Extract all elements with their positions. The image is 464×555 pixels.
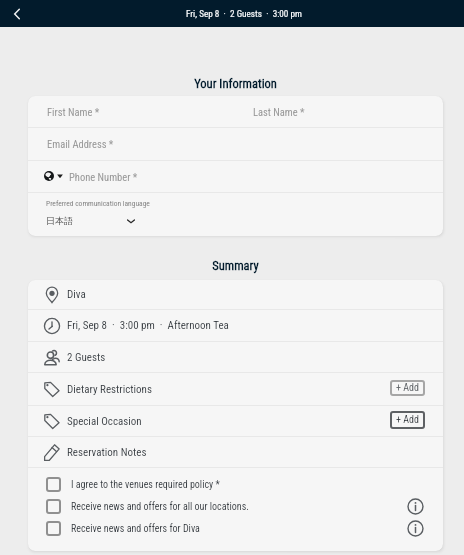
staticText: Summary <box>28 258 443 273</box>
button[interactable]: Receive news and offers for all our loca… <box>28 495 443 517</box>
staticText: + Add <box>396 414 419 426</box>
button[interactable]: Back <box>4 1 30 27</box>
staticText: 日本語 <box>46 215 73 226</box>
button[interactable]: Diva <box>28 280 443 309</box>
button[interactable]: + Add <box>390 411 425 429</box>
button[interactable]: Phone Number * <box>28 161 443 192</box>
button[interactable]: First Name * <box>28 96 235 127</box>
staticText: I agree to the venues required policy * <box>71 479 220 491</box>
staticText: Reservation Notes <box>67 446 147 459</box>
staticText: Diva <box>67 288 86 301</box>
button[interactable]: Reservation Notes <box>28 437 443 467</box>
button[interactable]: Receive news and offers for Diva <box>28 517 443 539</box>
button[interactable]: Last Name * <box>235 96 443 127</box>
staticText: 2 Guests <box>67 351 106 364</box>
button[interactable]: Special Occasion <box>28 406 443 436</box>
button[interactable]: + Add <box>390 380 425 396</box>
button[interactable]: Dietary Restrictions <box>28 373 443 405</box>
button[interactable]: More information <box>407 498 424 515</box>
staticText: Special Occasion <box>67 415 142 428</box>
button[interactable]: More information <box>407 520 424 537</box>
button[interactable]: Email Address * <box>28 128 443 160</box>
staticText: Fri, Sep 8 · 3:00 pm · Afternoon Tea <box>67 319 229 332</box>
staticText: First Name * <box>47 106 100 118</box>
button[interactable]: 2 Guests <box>28 342 443 372</box>
staticText: Email Address * <box>47 138 114 150</box>
staticText: Receive news and offers for all our loca… <box>71 501 249 513</box>
staticText: + Add <box>396 382 419 394</box>
staticText: Dietary Restrictions <box>67 383 152 396</box>
staticText: Phone Number * <box>69 171 138 183</box>
button[interactable]: Preferred communication language <box>28 193 443 236</box>
button[interactable]: Fri, Sep 8 · 3:00 pm · Afternoon Tea <box>28 310 443 341</box>
staticText: Fri, Sep 8 · 2 Guests · 3:00 pm <box>186 8 302 19</box>
staticText: Preferred communication language <box>46 199 150 208</box>
button[interactable]: I agree to the venues required policy * <box>28 473 443 495</box>
staticText: Your Information <box>28 76 443 91</box>
staticText: Receive news and offers for Diva <box>71 523 200 535</box>
staticText: Last Name * <box>253 106 305 118</box>
